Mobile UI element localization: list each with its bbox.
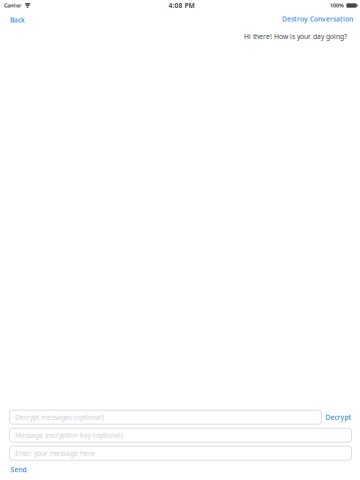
button[interactable]: Back	[9, 13, 26, 25]
staticText: Send	[10, 465, 26, 474]
button[interactable]: Send	[9, 464, 27, 475]
staticText: 100%	[330, 2, 344, 9]
button[interactable]: Destroy Conversation	[281, 13, 354, 25]
button[interactable]: Message encryption key (optional)	[9, 428, 351, 442]
staticText: Message encryption key (optional)	[15, 431, 123, 440]
staticText: Destroy Conversation	[282, 15, 353, 23]
staticText: Carrier	[4, 2, 21, 9]
staticText: Decrypt	[325, 413, 351, 422]
staticText: 4:08 PM	[168, 1, 194, 10]
button[interactable]: Decrypt	[321, 411, 351, 424]
staticText: Hi there! How is your day going?	[244, 32, 347, 41]
staticText: Decrypt messages (optional)	[15, 413, 104, 422]
button[interactable]: Decrypt messages (optional)	[9, 410, 321, 424]
staticText: Back	[10, 16, 25, 24]
staticText: Enter your message here	[15, 449, 95, 458]
button[interactable]: Enter your message here	[9, 446, 351, 460]
